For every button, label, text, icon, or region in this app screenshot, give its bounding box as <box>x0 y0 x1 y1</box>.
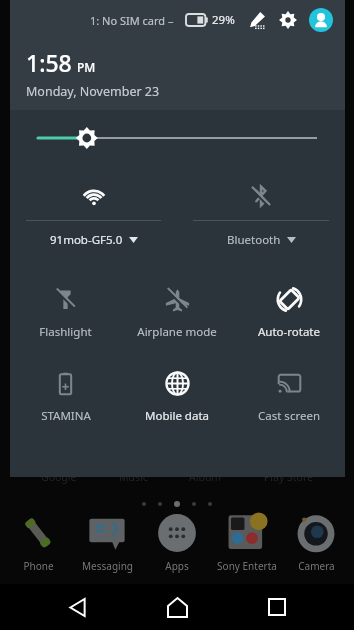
staticText: Bluetooth <box>227 232 281 248</box>
staticText: Apps <box>165 559 189 573</box>
staticText: STAMINA <box>41 408 91 424</box>
button[interactable]: Brightness <box>10 110 345 166</box>
staticText: Flashlight <box>39 324 92 340</box>
button[interactable]: 91mob-GF5.0 <box>10 174 177 262</box>
button[interactable]: Auto-rotate <box>233 282 345 344</box>
button[interactable]: Airplane mode <box>121 282 233 344</box>
staticText: Phone <box>23 559 54 573</box>
button[interactable]: Home <box>154 584 200 630</box>
button[interactable]: Mobile data <box>121 366 233 428</box>
button[interactable]: Messaging <box>75 512 139 573</box>
staticText: 29% <box>212 12 235 28</box>
staticText: Airplane mode <box>137 324 217 340</box>
staticText: Play Store <box>264 470 313 484</box>
staticText: Cast screen <box>258 408 320 424</box>
staticText: Mobile data <box>145 408 209 424</box>
button[interactable]: Apps <box>145 512 209 573</box>
button[interactable]: Bluetooth <box>177 174 345 262</box>
staticText: 1:58 <box>26 47 72 78</box>
staticText: Auto-rotate <box>258 324 320 340</box>
button[interactable]: Phone <box>6 512 70 573</box>
staticText: Album <box>189 470 222 484</box>
button[interactable]: User profile <box>309 8 333 32</box>
staticText: Google <box>41 470 77 484</box>
button[interactable]: Cast screen <box>233 366 345 428</box>
button[interactable]: Recents <box>254 584 300 630</box>
staticText: Camera <box>298 559 335 573</box>
staticText: Sony Enterta <box>217 559 277 573</box>
staticText: 91mob-GF5.0 <box>50 232 123 248</box>
button[interactable]: Camera <box>284 512 348 573</box>
staticText: Messaging <box>82 559 133 573</box>
staticText: PM <box>77 59 96 75</box>
button[interactable]: STAMINA <box>10 366 121 428</box>
button[interactable]: Edit quick settings <box>245 9 267 31</box>
button[interactable]: Settings <box>276 8 300 32</box>
staticText: 1: No SIM card – <box>90 13 174 28</box>
button[interactable]: Flashlight <box>10 282 121 344</box>
staticText: Music <box>119 470 148 484</box>
button[interactable]: Back <box>54 584 100 630</box>
button[interactable]: Sony Enterta <box>215 512 279 573</box>
staticText: Monday, November 23 <box>26 83 160 100</box>
